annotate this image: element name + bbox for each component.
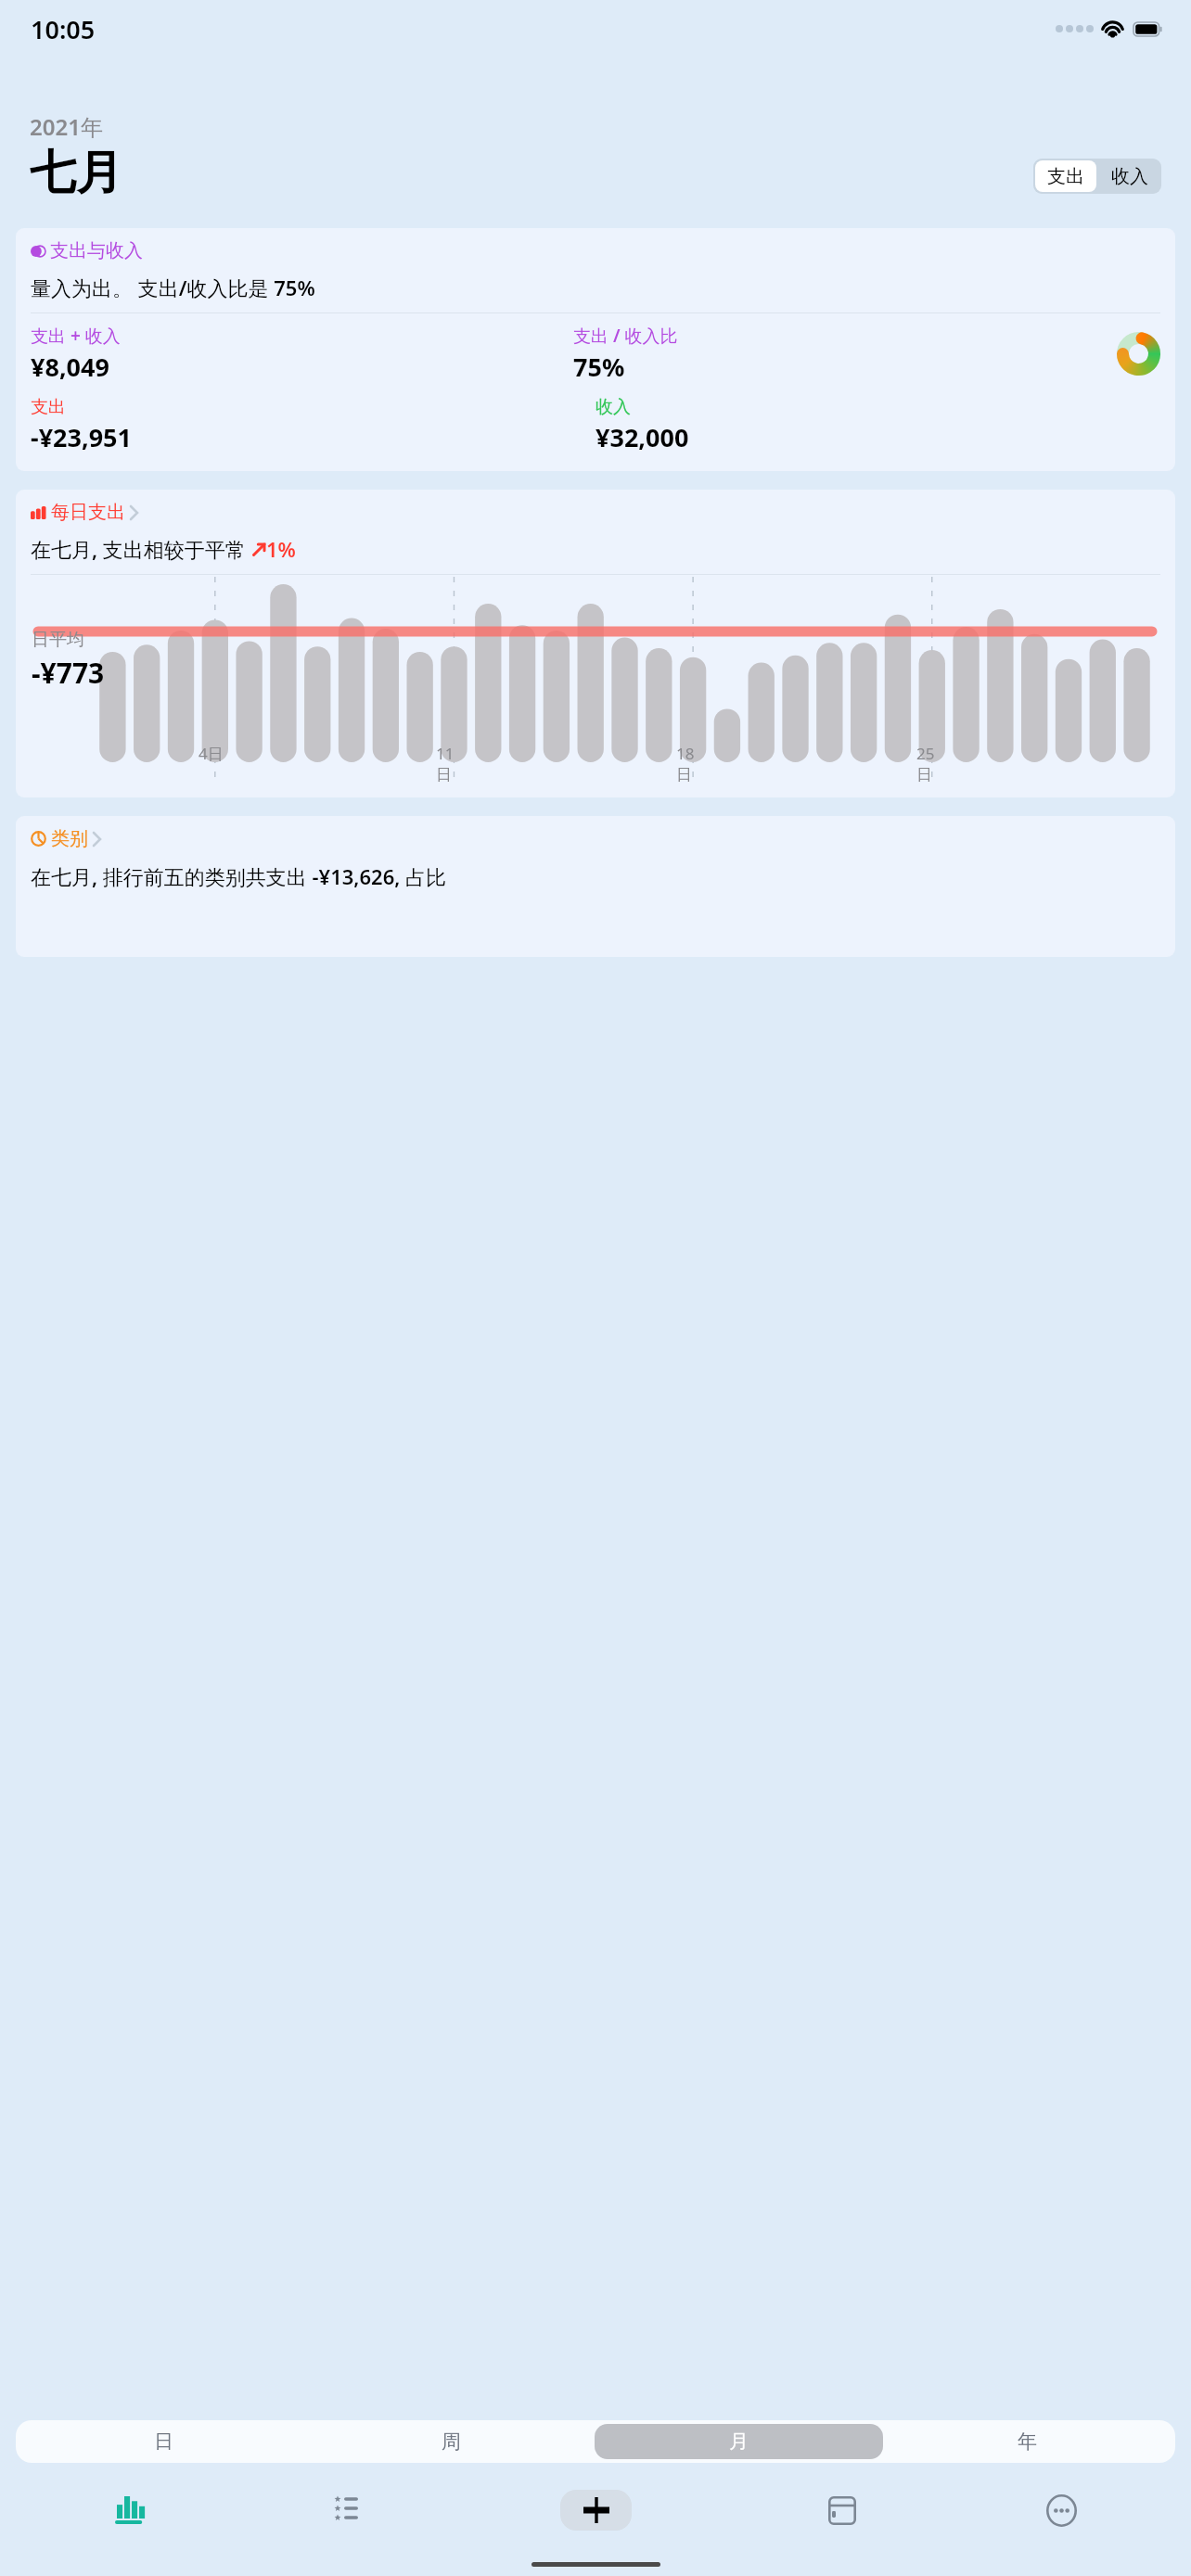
button[interactable]: 日 bbox=[19, 2424, 307, 2459]
staticText: 25日 bbox=[916, 743, 948, 784]
button[interactable]: Add bbox=[560, 2490, 632, 2531]
button[interactable]: Records bbox=[240, 2476, 459, 2544]
staticText: 月 bbox=[729, 2429, 749, 2454]
staticText: 11日 bbox=[436, 743, 467, 784]
staticText: 支出 + 收入 bbox=[31, 324, 121, 348]
staticText: 日平均 bbox=[32, 629, 84, 651]
staticText: 支出与收入 bbox=[50, 239, 143, 262]
button[interactable]: 年 bbox=[883, 2424, 1172, 2459]
staticText: 类别 bbox=[51, 827, 88, 850]
staticText: 收入 bbox=[1111, 165, 1148, 188]
staticText: ¥32,000 bbox=[595, 420, 689, 454]
staticText: 4日 bbox=[198, 743, 224, 764]
button[interactable]: 类别 bbox=[16, 816, 1175, 957]
staticText: 在七月, 支出相较于平常 bbox=[31, 535, 246, 563]
staticText: 支出 bbox=[1047, 165, 1084, 188]
button[interactable]: 支出与收入 bbox=[16, 228, 1175, 471]
staticText: 量入为出。 支出/收入比是 75% bbox=[31, 274, 315, 301]
staticText: 年 bbox=[1018, 2429, 1037, 2454]
staticText: ¥8,049 bbox=[31, 350, 109, 384]
staticText: 2021年 bbox=[30, 111, 103, 142]
staticText: 收入 bbox=[595, 396, 631, 418]
staticText: 75% bbox=[573, 350, 625, 384]
button[interactable]: Statistics bbox=[20, 2476, 240, 2544]
button[interactable]: 收入 bbox=[1098, 159, 1161, 194]
staticText: 18日 bbox=[676, 743, 708, 784]
staticText: 1% bbox=[266, 535, 296, 563]
button[interactable]: 每日支出 bbox=[16, 490, 1175, 797]
staticText: 七月 bbox=[30, 144, 122, 202]
button[interactable]: 支出 bbox=[1035, 160, 1096, 192]
staticText: -¥773 bbox=[32, 654, 105, 692]
staticText: 支出 bbox=[31, 396, 66, 418]
staticText: 周 bbox=[442, 2429, 461, 2454]
button[interactable]: 月 bbox=[595, 2424, 883, 2459]
button[interactable]: More bbox=[952, 2476, 1171, 2544]
staticText: 10:05 bbox=[31, 12, 96, 46]
staticText: 支出 / 收入比 bbox=[573, 324, 678, 348]
button[interactable]: Accounts bbox=[733, 2476, 952, 2544]
button[interactable]: 周 bbox=[307, 2424, 595, 2459]
staticText: 每日支出 bbox=[51, 501, 125, 524]
staticText: 日 bbox=[154, 2429, 173, 2454]
staticText: 在七月, 排行前五的类别共支出 -¥13,626, 占比 bbox=[31, 862, 447, 890]
staticText: -¥23,951 bbox=[31, 420, 132, 454]
